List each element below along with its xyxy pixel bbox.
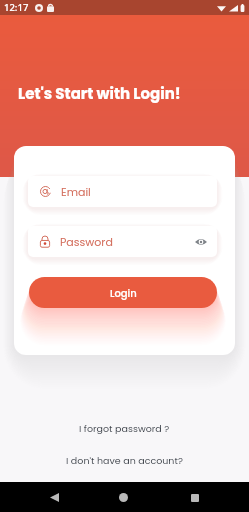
staticText: Login: [110, 286, 137, 300]
staticText: I don't have an account?: [66, 454, 183, 467]
button[interactable]: Back: [36, 482, 249, 512]
button[interactable]: I don't have an account?: [56, 451, 193, 470]
staticText: Let's Start with Login!: [18, 83, 181, 104]
button[interactable]: I forgot password ?: [69, 419, 180, 438]
button[interactable]: Show password: [194, 235, 208, 249]
button[interactable]: Login: [29, 277, 217, 308]
staticText: Email: [61, 184, 91, 199]
button[interactable]: Email: [28, 176, 217, 207]
staticText: Password: [60, 234, 113, 249]
staticText: 12:17: [4, 1, 29, 14]
staticText: I forgot password ?: [79, 422, 170, 435]
button[interactable]: Password: [28, 226, 217, 257]
